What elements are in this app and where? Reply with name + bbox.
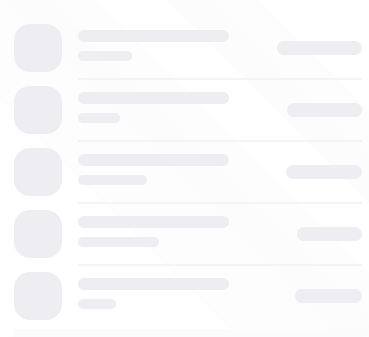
button[interactable]: Loading item [0,24,369,72]
button[interactable]: Loading item [0,148,369,196]
button[interactable]: Loading item [0,210,369,258]
button[interactable]: Loading item [0,86,369,134]
button[interactable]: Loading item [0,272,369,320]
